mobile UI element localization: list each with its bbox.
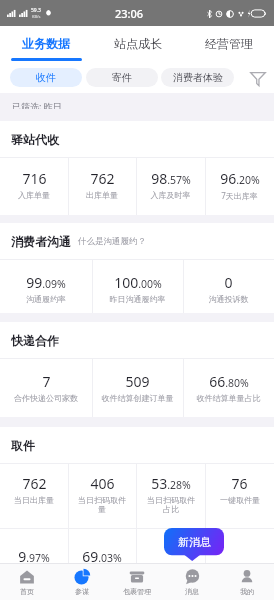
staticText: 100.00% (114, 273, 162, 292)
staticText: 当日自提率 (73, 568, 131, 578)
button[interactable]: 站点成长 (92, 26, 183, 61)
button[interactable]: 经营管理 (183, 26, 274, 61)
staticText: 驿站代收 (11, 132, 59, 147)
staticText: 762 (90, 169, 115, 188)
staticText: 我的 (240, 587, 254, 596)
staticText: 经营管理 (205, 36, 253, 51)
staticText: 收件结算创建订单量 (95, 393, 180, 403)
staticText: 消息 (185, 587, 199, 596)
button[interactable]: 业务数据 (0, 26, 92, 61)
staticText: 业务数据 (22, 36, 70, 51)
staticText: 716 (22, 169, 47, 188)
staticText: 69.03% (82, 547, 122, 566)
button[interactable]: 新消息 (164, 528, 224, 556)
button[interactable]: 收件 (10, 68, 82, 87)
staticText: 合作快递公司家数 (3, 393, 89, 403)
staticText: 一键取件量 (213, 495, 267, 505)
staticText: 新消息 (178, 535, 211, 549)
staticText: 取件 (11, 438, 35, 453)
staticText: 什么是沟通履约？ (78, 236, 146, 247)
staticText: 66.80% (209, 372, 249, 391)
staticText: 23:06 (115, 6, 144, 21)
staticText: 收件 (36, 71, 56, 84)
staticText: 站点成长 (114, 36, 162, 51)
staticText: 406 (90, 474, 115, 493)
staticText: 76 (231, 474, 248, 493)
staticText: 包裹管理 (123, 587, 151, 596)
staticText: 寄件 (112, 71, 132, 84)
staticText: 7天出库率 (208, 190, 271, 201)
staticText: 59.3 (31, 7, 41, 14)
button[interactable]: 我的 (219, 564, 274, 600)
staticText: 当日一键取件占比 (5, 568, 63, 588)
staticText: 沟通投诉数 (186, 294, 271, 304)
staticText: 53.28% (151, 474, 191, 493)
button[interactable]: 首页 (0, 564, 54, 600)
button[interactable]: 筛选 (249, 69, 267, 87)
staticText: 入库及时率 (139, 190, 202, 200)
staticText: 收件结算单量占比 (186, 393, 271, 403)
button[interactable]: 消息 (164, 564, 219, 600)
staticText: 98.57% (151, 169, 191, 188)
staticText: 昨日沟通履约率 (95, 294, 180, 304)
staticText: 当日扫码取件占比 (144, 495, 198, 515)
staticText: 当日出库量 (7, 495, 61, 505)
staticText: 509 (125, 372, 150, 391)
staticText: 762 (22, 474, 47, 493)
staticText: 96.20% (220, 169, 260, 188)
staticText: 消费者沟通 (11, 234, 71, 249)
staticText: 99.09% (26, 273, 66, 292)
staticText: 入库单量 (3, 190, 65, 200)
staticText: 7 (42, 372, 51, 391)
button[interactable]: 参谋 (54, 564, 109, 600)
staticText: 出库单量 (71, 190, 133, 200)
staticText: 0 (224, 273, 233, 292)
staticText: 快递合作 (11, 333, 59, 348)
staticText: 参谋 (75, 587, 89, 596)
staticText: 消费者体验 (173, 71, 223, 84)
button[interactable]: 寄件 (86, 68, 158, 87)
button[interactable]: 包裹管理 (109, 564, 164, 600)
staticText: 9.97% (18, 547, 50, 566)
staticText: 首页 (20, 587, 34, 596)
staticText: 当日扫码取件量 (75, 495, 129, 515)
staticText: 沟通履约率 (3, 294, 89, 304)
staticText: 已筛选: 昨日 (12, 100, 62, 109)
staticText: KB/s (32, 14, 41, 19)
button[interactable]: 消费者体验 (161, 68, 234, 87)
